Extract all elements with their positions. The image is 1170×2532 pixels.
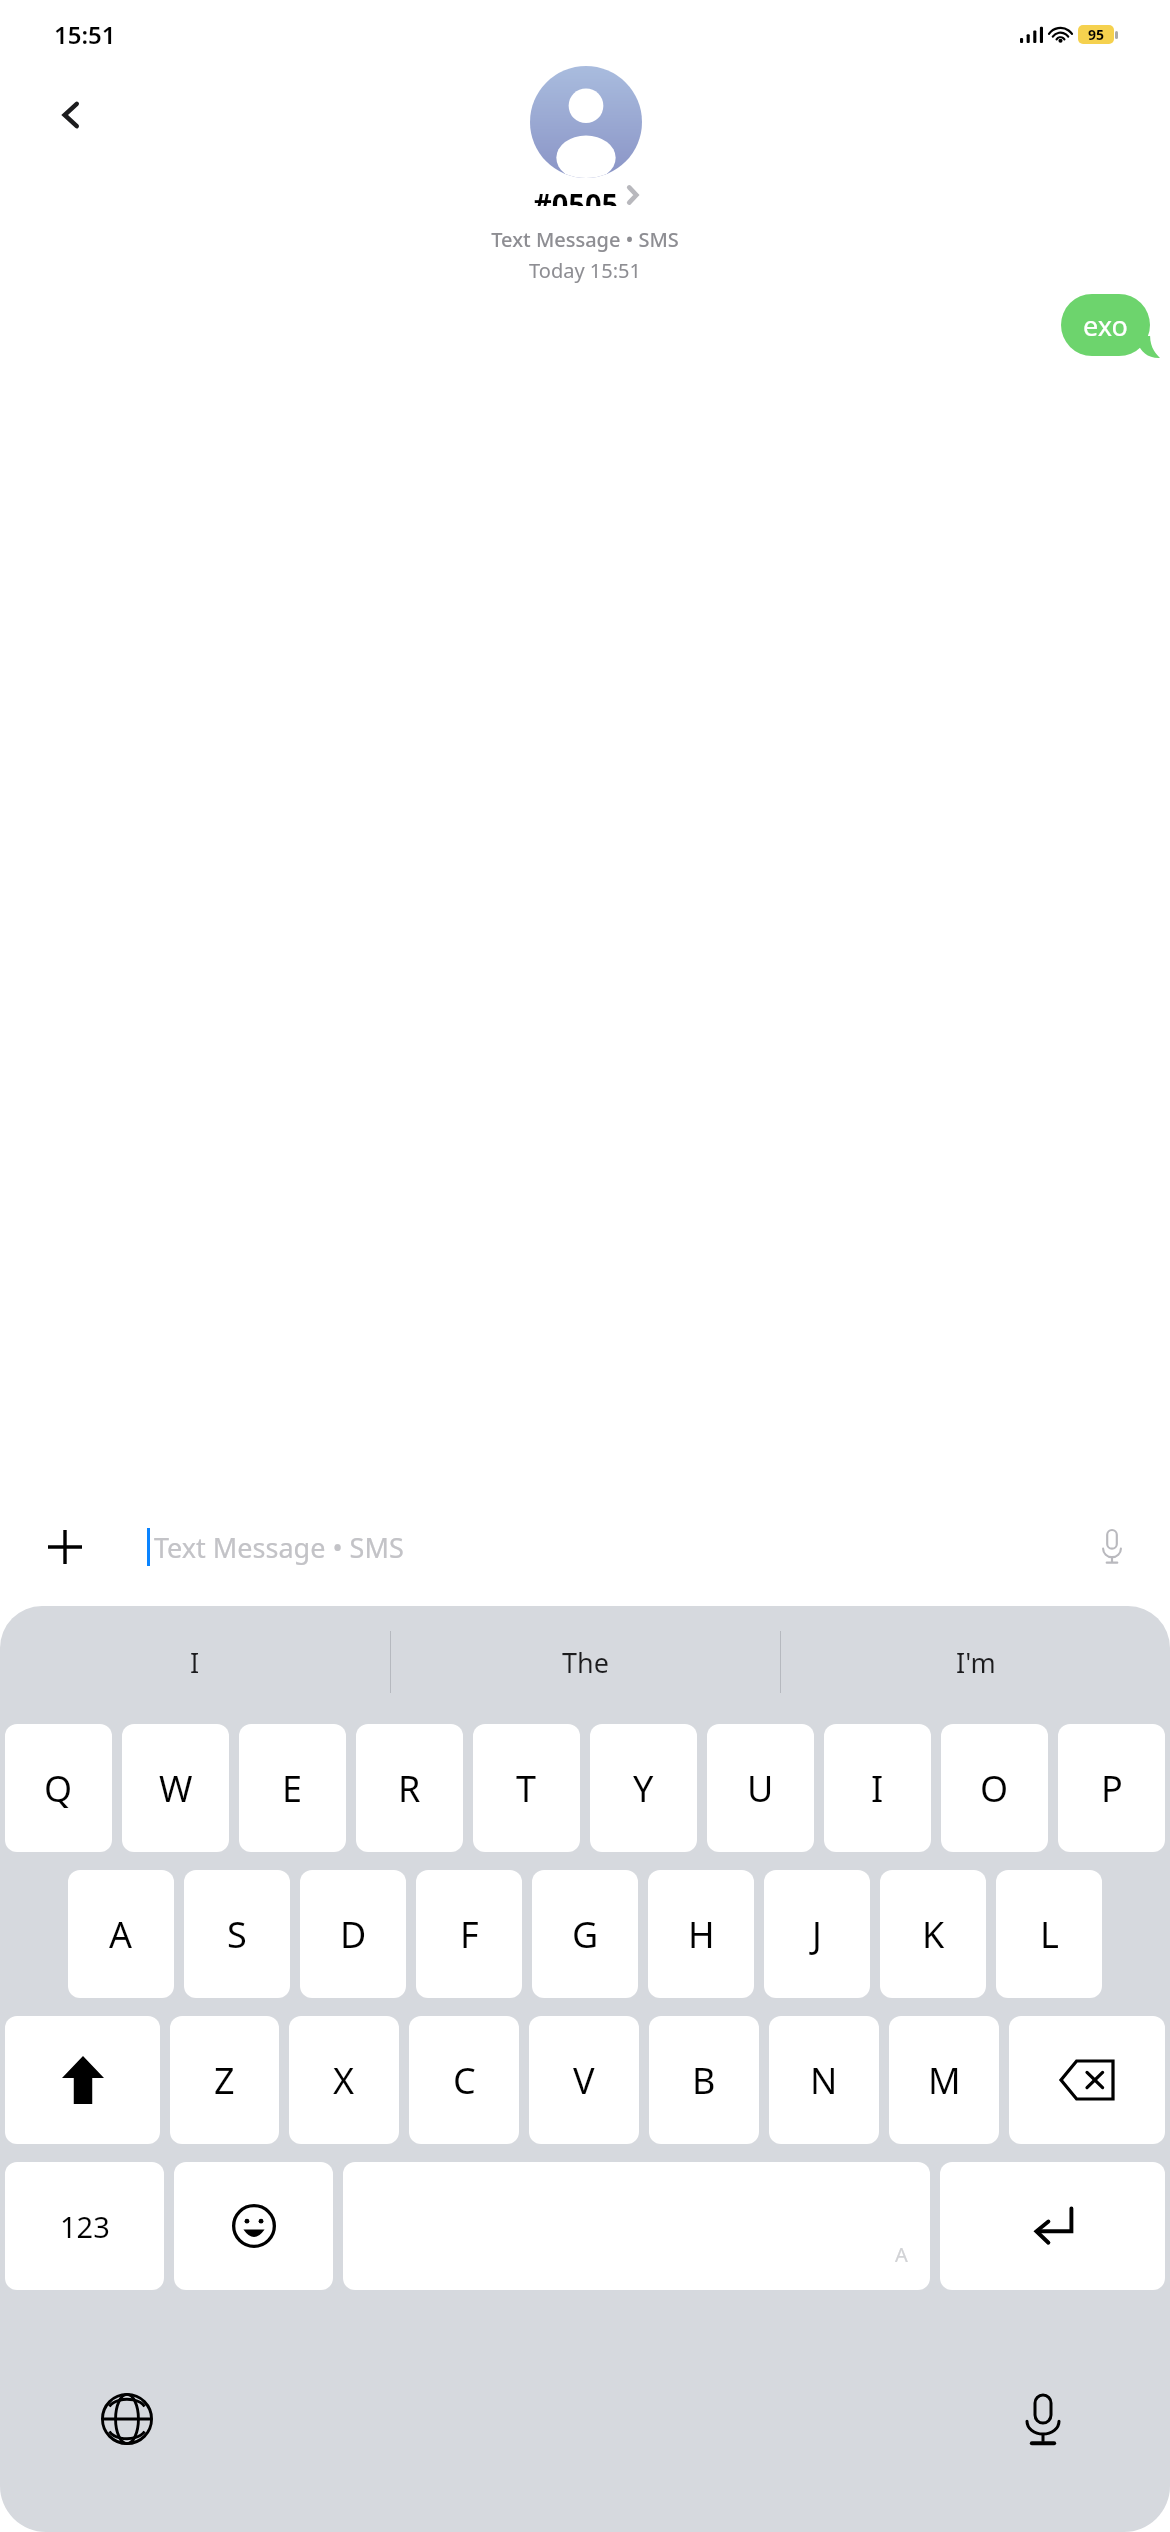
button[interactable]: Back [31,75,110,154]
button[interactable]: Return [940,2162,1165,2290]
button[interactable]: I'm [781,1606,1170,1718]
button[interactable]: E [239,1724,346,1852]
staticText: A [895,2241,908,2268]
button[interactable]: O [941,1724,1048,1852]
staticText: Today 15:51 [529,257,641,284]
staticText: I [190,1644,200,1681]
staticText: V [573,2056,595,2105]
button[interactable]: D [300,1870,406,1998]
staticText: D [340,1910,367,1959]
staticText: E [282,1764,303,1813]
button[interactable]: G [532,1870,638,1998]
button[interactable]: Y [590,1724,697,1852]
button[interactable]: J [764,1870,870,1998]
button[interactable]: W [122,1724,229,1852]
staticText: R [398,1764,421,1813]
staticText: exo [1083,307,1128,344]
button[interactable]: Text Message • SMS [125,1506,1146,1588]
staticText: Y [633,1764,654,1813]
staticText: I'm [956,1644,996,1681]
button[interactable]: T [473,1724,580,1852]
staticText: M [928,2056,961,2105]
button[interactable]: U [707,1724,814,1852]
staticText: Q [44,1764,73,1813]
button[interactable]: M [889,2016,999,2144]
staticText: N [810,2056,838,2105]
staticText: #0505 [533,184,619,206]
staticText: I [871,1764,884,1813]
staticText: P [1101,1764,1123,1813]
staticText: G [572,1910,599,1959]
button[interactable]: Dictation [1004,2380,1082,2458]
button[interactable]: X [289,2016,399,2144]
button[interactable]: Z [170,2016,279,2144]
button[interactable]: P [1058,1724,1165,1852]
button[interactable]: 123 [5,2162,164,2290]
button[interactable]: A [68,1870,174,1998]
staticText: 95 [1088,25,1105,44]
button[interactable]: The [391,1606,780,1718]
button[interactable]: L [996,1870,1102,1998]
button[interactable]: Q [5,1724,112,1852]
button[interactable]: H [648,1870,754,1998]
button[interactable]: Add attachment [24,1506,106,1588]
button[interactable]: exo [1061,294,1150,356]
staticText: Text Message • SMS [491,226,679,253]
button[interactable]: Backspace [1009,2016,1165,2144]
staticText: K [922,1910,945,1959]
staticText: H [688,1910,715,1959]
button[interactable]: B [649,2016,759,2144]
staticText: Text Message • SMS [154,1529,404,1566]
button[interactable]: V [529,2016,639,2144]
button[interactable]: I [0,1606,390,1718]
staticText: 15:51 [54,18,116,51]
staticText: L [1040,1910,1059,1959]
staticText: Z [214,2056,235,2105]
staticText: S [227,1910,247,1959]
staticText: W [159,1764,193,1813]
button[interactable]: Contact avatar [530,66,642,178]
staticText: U [747,1764,774,1813]
button[interactable]: I [824,1724,931,1852]
button[interactable]: K [880,1870,986,1998]
staticText: J [812,1910,822,1959]
button[interactable]: R [356,1724,463,1852]
staticText: A [109,1910,133,1959]
button[interactable]: N [769,2016,879,2144]
staticText: 123 [60,2207,110,2246]
staticText: B [692,2056,716,2105]
button[interactable]: F [416,1870,522,1998]
staticText: O [980,1764,1009,1813]
staticText: The [562,1644,609,1681]
staticText: F [460,1910,479,1959]
staticText: T [516,1764,537,1813]
button[interactable]: C [409,2016,519,2144]
button[interactable]: #0505 [513,178,658,212]
button[interactable]: Shift [5,2016,160,2144]
button[interactable]: Change keyboard [88,2380,166,2458]
staticText: X [333,2056,355,2105]
staticText: C [453,2056,476,2105]
button[interactable]: S [184,1870,290,1998]
button[interactable]: Emoji [174,2162,333,2290]
